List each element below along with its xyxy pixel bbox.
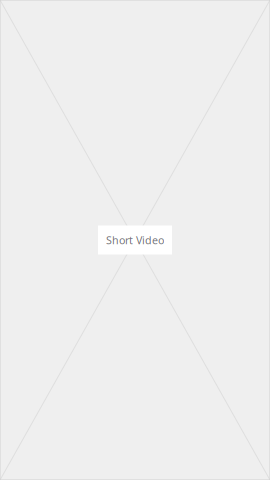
button[interactable]: Short Video: [0, 0, 270, 480]
staticText: Short Video: [106, 233, 164, 247]
